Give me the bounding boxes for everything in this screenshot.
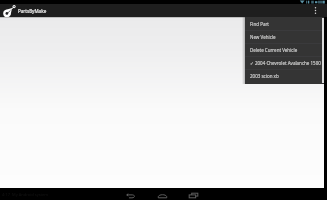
button[interactable]: Home	[156, 190, 168, 200]
button[interactable]: More options	[310, 4, 321, 17]
button[interactable]: New Vehicle	[245, 30, 324, 43]
staticText: 2003 scion xb	[250, 73, 279, 79]
button[interactable]: Recent apps	[187, 190, 199, 200]
staticText: PartsByMake	[18, 8, 47, 14]
button[interactable]: App icon	[3, 4, 16, 17]
button[interactable]: Back	[124, 190, 136, 200]
staticText: Find Part	[250, 21, 269, 27]
button[interactable]: Find Part	[245, 17, 324, 30]
staticText: Delete Current Vehicle	[250, 47, 298, 53]
button[interactable]: 2003 scion xb	[245, 69, 324, 82]
staticText: New Vehicle	[250, 34, 276, 40]
button[interactable]: Delete Current Vehicle	[245, 43, 324, 56]
staticText: 4:17 My Android system	[2, 192, 49, 197]
staticText: ✓ 2004 Chevrolet Avalanche 1500	[250, 60, 321, 66]
button[interactable]: ✓ 2004 Chevrolet Avalanche 1500	[245, 56, 324, 69]
